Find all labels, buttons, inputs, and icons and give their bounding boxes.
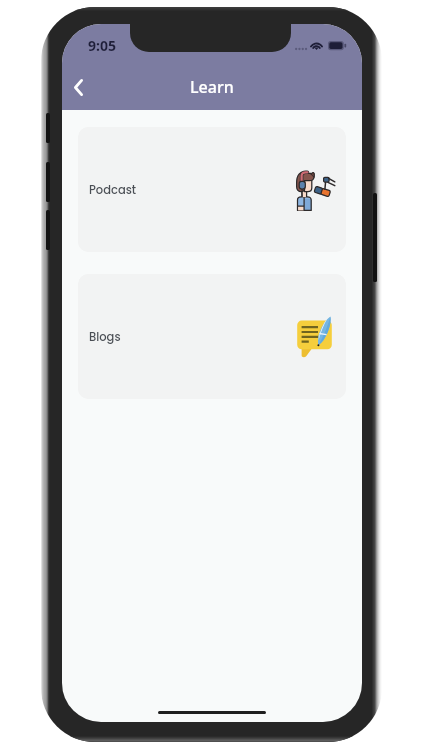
button[interactable]: Podcast [78, 127, 346, 252]
staticText: 9:05 [88, 36, 116, 55]
staticText: Podcast [89, 182, 137, 198]
button[interactable]: Blogs [78, 274, 346, 399]
staticText: Learn [190, 76, 234, 98]
staticText: Blogs [89, 329, 121, 345]
button[interactable]: Back [62, 67, 95, 107]
